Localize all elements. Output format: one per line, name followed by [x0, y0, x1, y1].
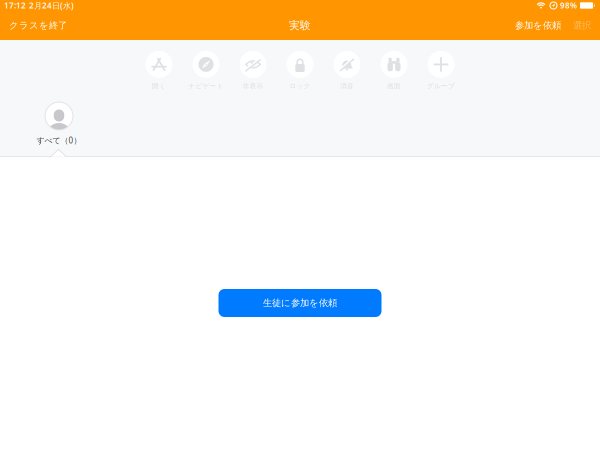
staticText: クラスを終了 [9, 20, 67, 31]
staticText: 生徒に参加を依頼 [263, 297, 337, 309]
staticText: 実験 [289, 19, 311, 32]
button[interactable]: クラスを終了 [0, 12, 76, 38]
staticText: 開く [152, 82, 166, 90]
staticText: 選択 [573, 20, 591, 31]
button[interactable]: 選択 [566, 12, 600, 38]
button[interactable]: 消音 [323, 48, 370, 93]
staticText: ロック [289, 82, 310, 90]
staticText: グループ [427, 82, 455, 90]
button[interactable]: グループ [417, 48, 464, 93]
staticText: ナビゲート [188, 82, 223, 90]
button[interactable]: 参加を依頼 [510, 12, 566, 38]
staticText: 画面 [387, 82, 401, 90]
button[interactable]: ロック [276, 48, 323, 93]
button[interactable]: 非表示 [229, 48, 276, 93]
button[interactable]: 画面 [370, 48, 417, 93]
button[interactable]: 生徒に参加を依頼 [218, 289, 381, 317]
staticText: 98% [560, 0, 577, 11]
button[interactable]: すべて（0） [22, 102, 96, 146]
staticText: すべて（0） [36, 135, 81, 146]
staticText: 17:12 [4, 0, 26, 11]
staticText: 参加を依頼 [515, 20, 561, 31]
button[interactable]: ナビゲート [182, 48, 229, 93]
staticText: 非表示 [242, 82, 263, 90]
staticText: 消音 [340, 82, 354, 90]
staticText: 2月24日(水) [29, 0, 74, 11]
button[interactable]: 開く [135, 48, 182, 93]
